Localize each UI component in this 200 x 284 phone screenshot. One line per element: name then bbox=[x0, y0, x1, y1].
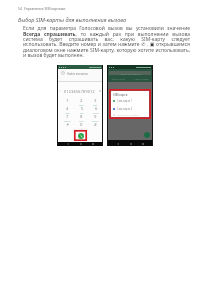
button[interactable]: Назад bbox=[115, 141, 120, 146]
button[interactable]: 1 bbox=[62, 98, 73, 106]
staticText: SIM-карта bbox=[113, 93, 128, 97]
staticText: 0 bbox=[80, 122, 83, 128]
button[interactable]: Назад bbox=[65, 142, 70, 146]
staticText: 6 bbox=[95, 106, 98, 112]
staticText: Выбор SIM-карты для выполнения вызова bbox=[18, 16, 127, 23]
staticText: ✶ bbox=[66, 122, 70, 127]
button[interactable]: Сим-карта 1 bbox=[113, 99, 149, 103]
button[interactable]: Недавние bbox=[140, 141, 145, 146]
staticText: Если для параметра Голосовой вызов вы ус… bbox=[23, 25, 190, 59]
staticText: # bbox=[94, 122, 97, 128]
button[interactable]: ✶ bbox=[62, 122, 73, 130]
button[interactable]: Главный экран bbox=[78, 142, 83, 146]
staticText: 9 bbox=[94, 114, 97, 120]
staticText: WXYZ bbox=[92, 120, 99, 122]
button[interactable]: КОНТАКТЫ bbox=[108, 76, 130, 82]
staticText: GHI bbox=[65, 112, 70, 114]
button[interactable]: ИЗБРАННОЕ bbox=[130, 76, 152, 82]
button[interactable]: 3 bbox=[90, 98, 101, 106]
button[interactable]: 8 bbox=[76, 114, 87, 122]
button[interactable]: Сим-карта 2 bbox=[113, 107, 149, 111]
button[interactable]: Вызов bbox=[74, 130, 87, 141]
staticText: 4 bbox=[66, 106, 69, 112]
staticText: 5 bbox=[81, 106, 84, 112]
staticText: 0123456789012 bbox=[64, 89, 95, 93]
button[interactable]: 4 bbox=[62, 106, 73, 114]
staticText: 7 bbox=[66, 114, 69, 120]
staticText: Запомнить выбор bbox=[117, 113, 139, 116]
button[interactable]: 7 bbox=[62, 114, 73, 122]
button[interactable]: # bbox=[90, 122, 101, 130]
button[interactable]: 6 bbox=[90, 106, 101, 114]
staticText: TUV bbox=[79, 120, 84, 122]
staticText: 3 bbox=[94, 98, 97, 104]
staticText: 54. Управление SIM-картами bbox=[18, 6, 66, 11]
button[interactable]: 0 bbox=[76, 122, 87, 130]
staticText: + bbox=[81, 128, 83, 130]
staticText: DEF bbox=[93, 104, 98, 106]
staticText: 8 bbox=[80, 114, 83, 120]
button[interactable]: 2 bbox=[76, 98, 87, 106]
staticText: ИЗБРАННОЕ bbox=[134, 78, 149, 81]
button[interactable]: Добавить контакт bbox=[144, 132, 150, 138]
button[interactable]: Главный экран bbox=[128, 141, 133, 146]
staticText: КОНТАКТЫ bbox=[112, 78, 126, 81]
staticText: Сим-карта 2 bbox=[117, 107, 133, 111]
staticText: ABC bbox=[79, 104, 84, 106]
staticText: 1 bbox=[66, 98, 69, 104]
button[interactable]: 5 bbox=[76, 106, 87, 114]
button[interactable]: Найти контакты bbox=[61, 71, 102, 81]
staticText: Поиск контактов bbox=[120, 72, 141, 75]
button[interactable]: 9 bbox=[90, 114, 101, 122]
button[interactable]: Поиск контактов bbox=[109, 71, 151, 75]
staticText: JKL bbox=[80, 112, 84, 114]
button[interactable]: Недавние bbox=[90, 142, 95, 146]
staticText: 2 bbox=[80, 98, 83, 104]
staticText: Найти контакты bbox=[67, 72, 88, 76]
staticText: Сим-карта 1 bbox=[117, 99, 133, 103]
staticText: MNO bbox=[93, 112, 99, 114]
staticText: PQRS bbox=[64, 120, 71, 122]
